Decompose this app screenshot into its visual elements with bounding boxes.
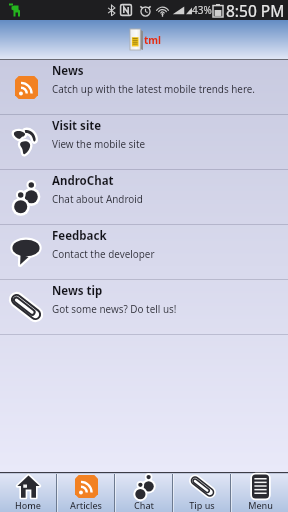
staticText: Menu [248,499,273,511]
staticText: Home [15,499,41,511]
button[interactable]: Articles [58,474,114,512]
staticText: News tip [52,283,103,299]
button[interactable]: News [0,60,288,115]
button[interactable]: Feedback [0,225,288,280]
staticText: tml [144,33,162,47]
staticText: News [52,63,84,79]
button[interactable]: AndroChat [0,170,288,225]
button[interactable]: Home [0,474,56,512]
staticText: Articles [70,499,102,511]
button[interactable]: News tip [0,280,288,335]
staticText: Feedback [52,228,107,244]
staticText: 8:50 PM [226,0,285,20]
staticText: Chat [134,499,154,511]
staticText: AndroChat [52,173,114,189]
button[interactable]: Tip us [174,474,230,512]
staticText: 43% [192,3,212,17]
staticText: Tip us [189,499,215,511]
button[interactable]: Visit site [0,115,288,170]
staticText: Chat about Android [52,192,143,205]
button[interactable]: Menu [232,474,288,512]
staticText: View the mobile site [52,137,146,150]
staticText: Visit site [52,118,102,134]
staticText: Catch up with the latest mobile trends h… [52,82,256,95]
button[interactable]: Chat [116,474,172,512]
staticText: Contact the developer [52,247,155,260]
staticText: Got some news? Do tell us! [52,302,177,315]
